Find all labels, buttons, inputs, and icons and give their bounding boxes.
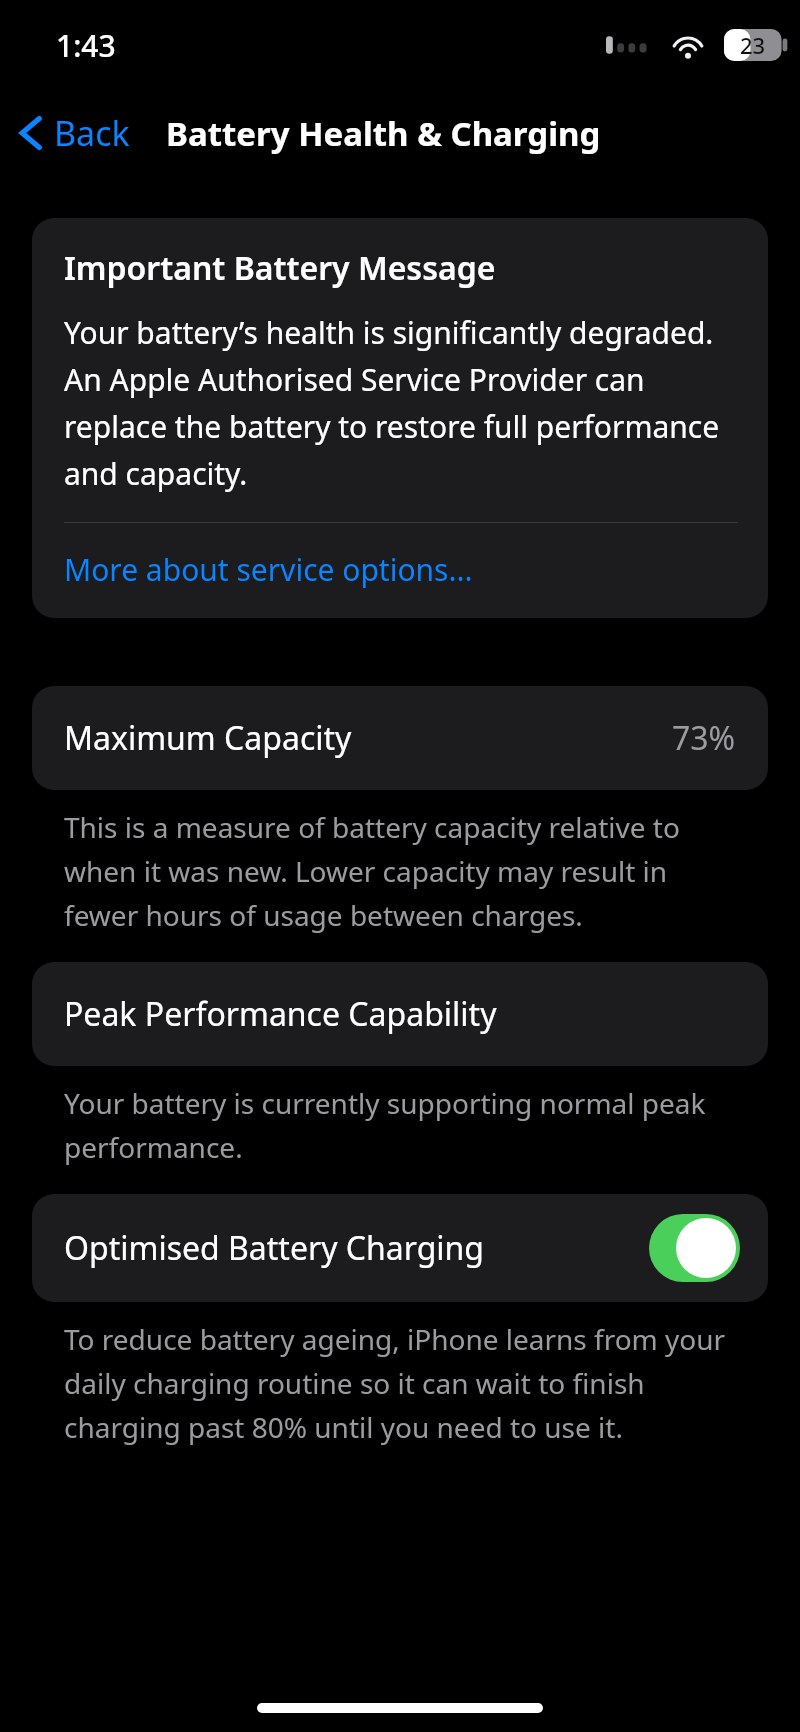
staticText: Battery Health & Charging [166,111,601,156]
staticText: This is a measure of battery capacity re… [64,808,736,934]
button[interactable]: Back [0,102,142,164]
staticText: Back [54,110,130,156]
button[interactable]: Peak Performance Capability [32,962,768,1066]
staticText: 73% [672,716,736,760]
staticText: Your battery’s health is significantly d… [64,312,738,494]
staticText: 23 [740,30,766,60]
staticText: 1:43 [56,25,116,66]
staticText: Important Battery Message [64,246,496,290]
button[interactable]: Optimised Battery Charging toggle, on [649,1214,740,1282]
staticText: More about service options... [64,549,473,590]
button[interactable]: Maximum Capacity [32,686,768,790]
staticText: Peak Performance Capability [64,992,497,1036]
staticText: Maximum Capacity [64,716,352,760]
staticText: Optimised Battery Charging [64,1226,485,1270]
button[interactable]: More about service options... [64,523,738,618]
staticText: To reduce battery ageing, iPhone learns … [64,1320,736,1446]
staticText: Your battery is currently supporting nor… [64,1084,736,1166]
